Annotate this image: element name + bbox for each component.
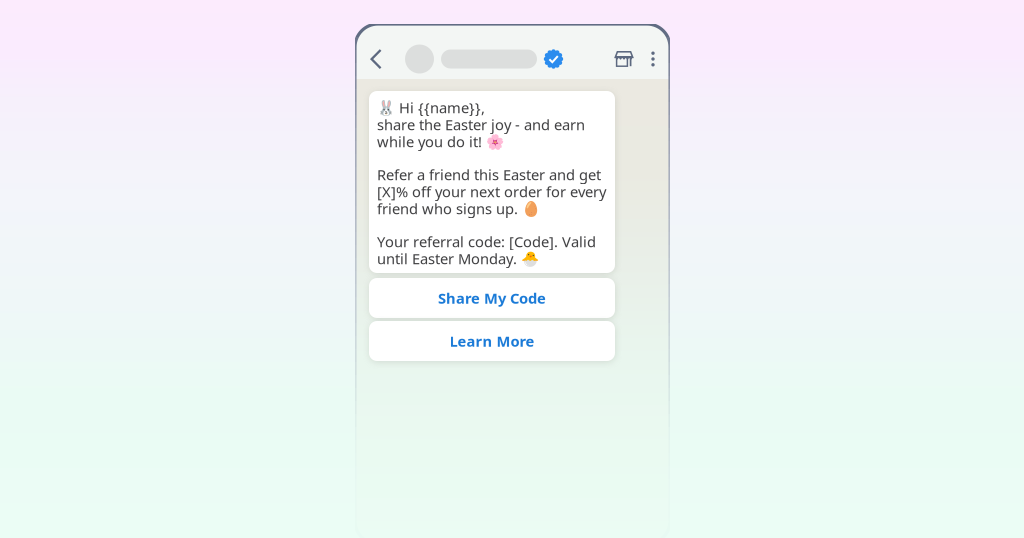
button[interactable]: Learn More <box>369 321 615 361</box>
staticText: Learn More <box>449 331 534 351</box>
button[interactable]: Share My Code <box>369 278 615 318</box>
staticText: while you do it! 🌸 <box>377 132 504 151</box>
button[interactable]: Business catalog <box>611 40 637 78</box>
button[interactable]: More options <box>637 41 670 76</box>
staticText: Refer a friend this Easter and get <box>377 165 601 184</box>
staticText: [X]% off your next order for every <box>377 182 606 201</box>
button[interactable]: Back <box>355 40 405 78</box>
staticText: Your referral code: [Code]. Valid <box>377 232 596 251</box>
staticText: friend who signs up. 🥚 <box>377 199 540 218</box>
staticText: share the Easter joy - and earn <box>377 115 585 134</box>
staticText: 🐰 Hi {{name}}, <box>377 98 485 117</box>
staticText: until Easter Monday. 🐣 <box>377 249 539 268</box>
staticText: Share My Code <box>438 288 546 308</box>
